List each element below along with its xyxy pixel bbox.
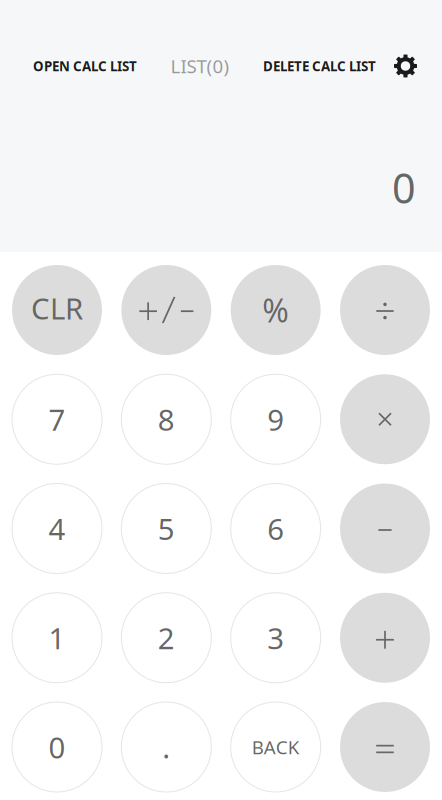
button[interactable]: Settings	[376, 54, 417, 77]
button[interactable]: 3	[231, 593, 321, 683]
button[interactable]: 8	[121, 374, 211, 464]
staticText: DELETE CALC LIST	[263, 57, 376, 75]
button[interactable]: 7	[12, 374, 102, 464]
button[interactable]: OPEN CALC LIST	[33, 57, 137, 75]
button[interactable]: Decimal point	[121, 702, 211, 792]
staticText: 9	[267, 400, 284, 439]
button[interactable]: Divide	[340, 265, 430, 355]
button[interactable]: DELETE CALC LIST	[263, 57, 376, 75]
staticText: 6	[267, 509, 284, 548]
button[interactable]: Multiply	[340, 374, 430, 464]
staticText: 1	[48, 618, 65, 657]
button[interactable]: 4	[12, 483, 102, 573]
button[interactable]: LIST(0)	[170, 54, 229, 78]
button[interactable]: Plus or minus	[121, 265, 211, 355]
button[interactable]: Subtract	[340, 483, 430, 573]
button[interactable]: Back	[231, 702, 321, 792]
staticText: OPEN CALC LIST	[33, 57, 137, 75]
button[interactable]: 5	[121, 483, 211, 573]
staticText: 3	[267, 618, 284, 657]
button[interactable]: 9	[231, 374, 321, 464]
button[interactable]: Percent	[231, 265, 321, 355]
staticText: 7	[48, 400, 65, 439]
staticText: 0	[48, 727, 65, 766]
button[interactable]: Add	[340, 593, 430, 683]
button[interactable]: Clear	[12, 265, 102, 355]
staticText: %	[262, 289, 289, 331]
staticText: 0	[392, 160, 416, 215]
staticText: LIST(0)	[170, 54, 229, 78]
staticText: .	[162, 727, 170, 766]
button[interactable]: 1	[12, 593, 102, 683]
staticText: 4	[48, 509, 65, 548]
button[interactable]: Equals	[340, 702, 430, 792]
staticText: 2	[158, 618, 175, 657]
staticText: 5	[158, 509, 175, 548]
button[interactable]: 0	[12, 702, 102, 792]
staticText: 8	[158, 400, 175, 439]
button[interactable]: 6	[231, 483, 321, 573]
staticText: CLR	[31, 288, 83, 327]
staticText: BACK	[252, 735, 300, 759]
button[interactable]: 2	[121, 593, 211, 683]
